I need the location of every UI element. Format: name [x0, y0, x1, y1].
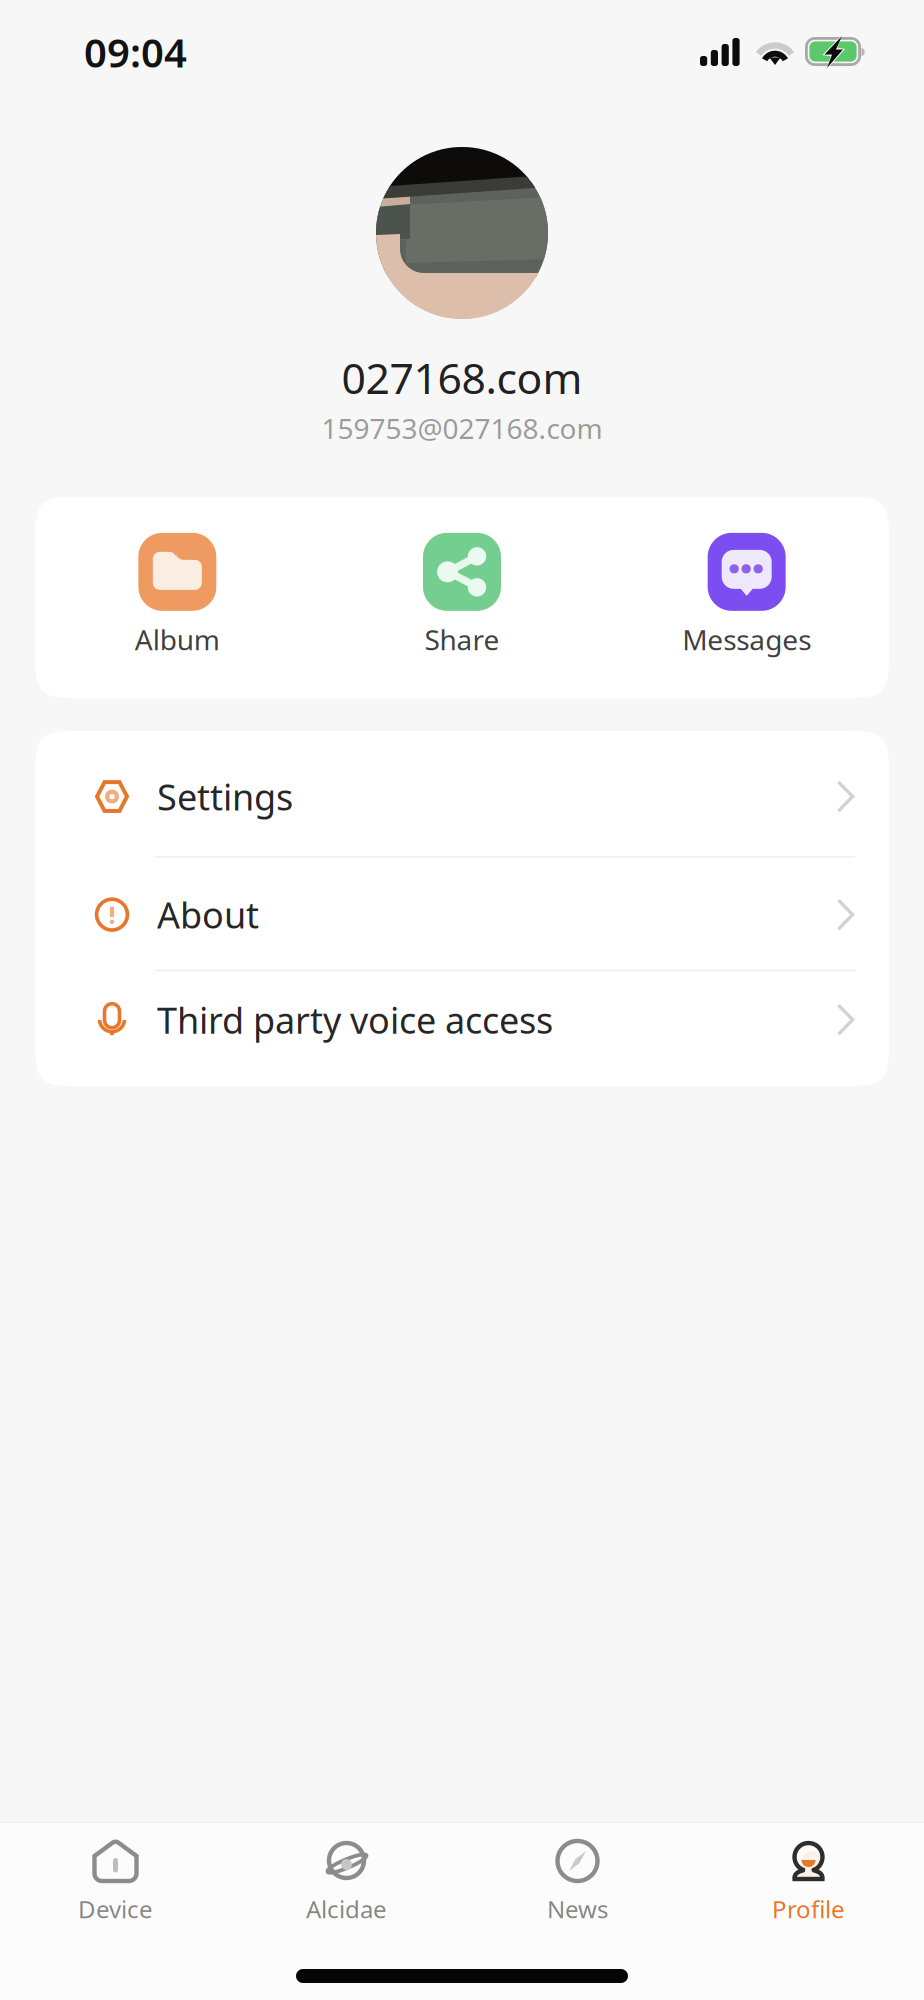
button[interactable]: Third party voice access — [35, 971, 889, 1066]
button[interactable]: Profile — [693, 1837, 924, 1933]
staticText: Profile — [772, 1893, 845, 1925]
staticText: Settings — [157, 773, 293, 820]
button[interactable]: About — [35, 858, 889, 970]
button[interactable]: News — [462, 1837, 693, 1933]
button[interactable]: 027168.com — [0, 147, 924, 447]
button[interactable]: Device — [0, 1837, 231, 1933]
button[interactable]: Settings — [35, 731, 889, 856]
staticText: Third party voice access — [157, 996, 553, 1044]
button[interactable]: Alcidae — [231, 1837, 462, 1933]
button[interactable]: Album — [35, 533, 320, 658]
staticText: News — [547, 1893, 608, 1925]
staticText: Share — [424, 621, 499, 658]
staticText: Messages — [682, 621, 811, 658]
staticText: Alcidae — [306, 1893, 387, 1925]
staticText: Album — [135, 621, 220, 658]
staticText: 027168.com — [341, 349, 582, 406]
staticText: 09:04 — [84, 25, 187, 78]
staticText: 159753@027168.com — [321, 410, 602, 447]
button[interactable]: Share — [320, 533, 604, 658]
staticText: About — [157, 891, 259, 938]
staticText: Device — [78, 1893, 153, 1925]
button[interactable]: Messages — [604, 533, 889, 658]
